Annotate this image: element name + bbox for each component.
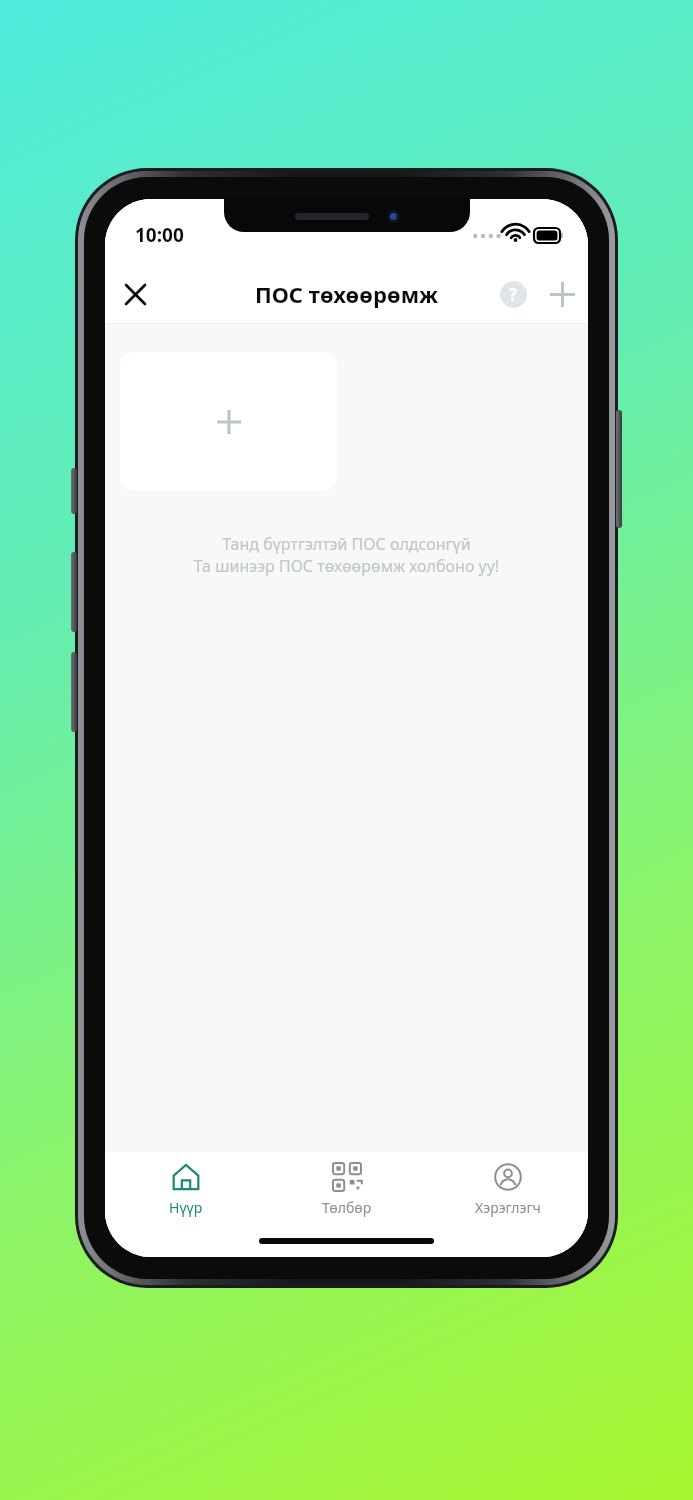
staticText: ? (509, 283, 518, 306)
staticText: 10:00 (135, 222, 184, 248)
button[interactable]: Хэрэглэгч (427, 1152, 588, 1224)
button[interactable]: Төлбөр (266, 1152, 427, 1224)
button[interactable]: Add (536, 268, 588, 320)
button[interactable]: Нүүр (105, 1152, 266, 1224)
button[interactable]: Help (490, 271, 536, 317)
staticText: Танд бүртгэлтэй ПОС олдсонгүй Та шинээр … (105, 533, 588, 577)
staticText: ПОС төхөөрөмж (255, 279, 439, 309)
button[interactable] (120, 352, 337, 491)
button[interactable]: Close (111, 270, 159, 318)
staticText: Хэрэглэгч (475, 1198, 541, 1217)
staticText: Төлбөр (322, 1198, 372, 1217)
staticText: Нүүр (169, 1198, 203, 1217)
